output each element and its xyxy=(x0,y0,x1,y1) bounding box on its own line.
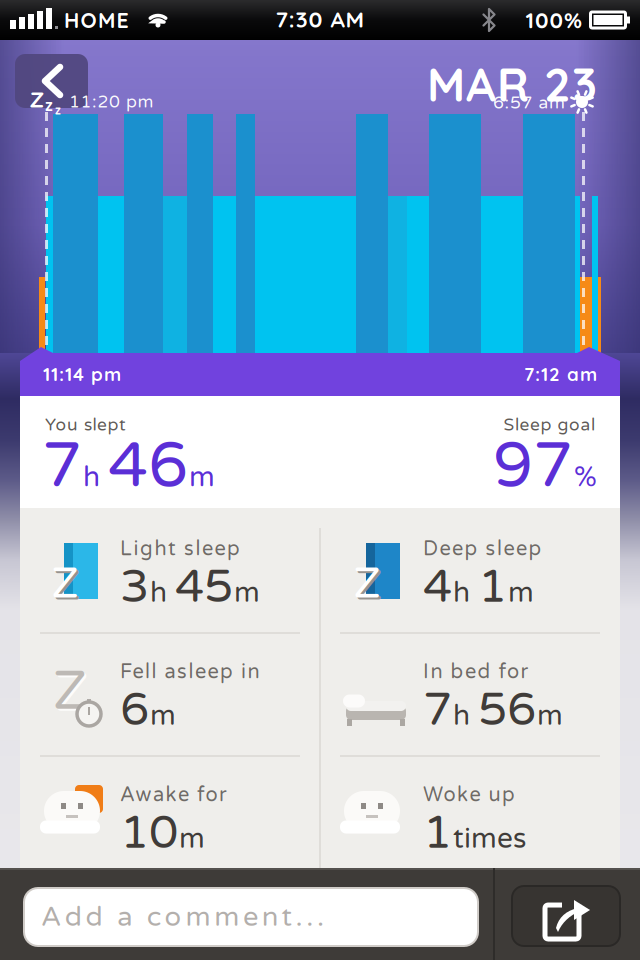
staticText: 11:20 pm xyxy=(69,92,153,112)
staticText: 11:14 pm xyxy=(43,362,121,386)
staticText: Deep sleep xyxy=(423,537,541,561)
staticText: 10 xyxy=(120,805,178,861)
button[interactable]: Back xyxy=(15,54,88,108)
button[interactable]: Add a comment xyxy=(24,888,478,946)
staticText: Z xyxy=(53,560,80,612)
staticText: Light sleep xyxy=(120,537,240,561)
staticText: m xyxy=(234,576,260,610)
staticText: z xyxy=(55,102,61,117)
staticText: Z xyxy=(29,85,44,113)
staticText: 1 xyxy=(478,559,507,615)
staticText: 3 xyxy=(120,559,149,615)
staticText: Sleep goal xyxy=(503,415,595,435)
staticText: HOME xyxy=(64,7,128,33)
staticText: 6 xyxy=(120,682,149,738)
staticText: 97 xyxy=(493,427,573,505)
staticText: Woke up xyxy=(423,783,515,807)
staticText: Fell asleep in xyxy=(120,660,259,684)
staticText: 56 xyxy=(478,682,536,738)
staticText: z xyxy=(45,95,53,115)
staticText: 1 xyxy=(423,805,452,861)
staticText: 7:30 AM xyxy=(275,5,364,33)
staticText: Add a comment... xyxy=(41,900,324,933)
staticText: 7 xyxy=(42,427,82,505)
staticText: h xyxy=(83,460,107,494)
staticText: Z xyxy=(355,560,382,612)
staticText: m xyxy=(508,576,534,610)
staticText: h xyxy=(150,576,174,610)
staticText: Z xyxy=(55,662,89,726)
staticText: 7 xyxy=(423,682,452,738)
staticText: 4 xyxy=(423,559,452,615)
button[interactable]: Share xyxy=(512,886,620,946)
staticText: Awake for xyxy=(120,783,227,807)
staticText: 46 xyxy=(108,427,188,505)
staticText: MAR 23 xyxy=(427,55,597,113)
staticText: m xyxy=(537,699,563,733)
staticText: 7:12 am xyxy=(524,362,597,386)
staticText: 45 xyxy=(175,559,233,615)
staticText: m xyxy=(150,699,176,733)
staticText: 100% xyxy=(525,6,582,34)
staticText: m xyxy=(179,822,205,856)
staticText: Z xyxy=(353,558,380,610)
staticText: Z xyxy=(51,558,78,610)
staticText: h xyxy=(453,576,477,610)
staticText: m xyxy=(189,460,215,494)
staticText: times xyxy=(453,822,526,856)
staticText: You slept xyxy=(45,415,126,435)
staticText: 6:57 am xyxy=(493,93,565,113)
staticText: In bed for xyxy=(423,660,528,684)
staticText: Z xyxy=(53,660,87,724)
staticText: % xyxy=(574,460,597,494)
staticText: h xyxy=(453,699,477,733)
